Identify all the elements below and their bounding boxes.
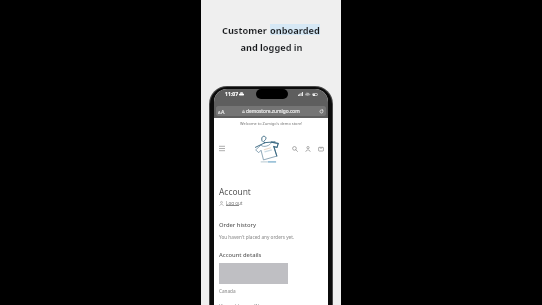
button[interactable]: Account	[219, 201, 224, 206]
staticText: and logged in	[240, 41, 303, 54]
button[interactable]: Menu	[219, 146, 225, 151]
staticText: Canada	[219, 288, 236, 294]
staticText: onboarded	[270, 24, 320, 37]
button[interactable]: Reload	[319, 109, 324, 114]
staticText: demostore.zumigo.com	[246, 108, 300, 115]
staticText: Account	[219, 186, 251, 197]
button[interactable]: Text size	[218, 108, 225, 115]
button[interactable]: Account	[219, 200, 243, 207]
staticText: You haven't placed any orders yet.	[219, 234, 295, 240]
staticText: 11:07	[225, 90, 239, 97]
staticText: A	[218, 110, 221, 115]
staticText: Customer	[222, 24, 270, 37]
button[interactable]: View addresses (1)	[219, 303, 260, 305]
button[interactable]: Account	[305, 146, 311, 152]
staticText: Account details	[219, 251, 262, 259]
staticText: Log out	[226, 200, 243, 206]
staticText: A	[221, 108, 225, 115]
staticText: Welcome to Zumigo's demo store!	[240, 121, 303, 126]
button[interactable]: Search	[292, 146, 298, 152]
button[interactable]: Cart	[318, 146, 324, 152]
staticText: Order history	[219, 221, 257, 229]
